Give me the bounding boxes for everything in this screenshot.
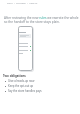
staticText: Say the store handles pays: [8, 89, 42, 93]
staticText: After reviewing the new rules we rewrote…: [4, 16, 80, 20]
button[interactable]: Docs › Strategy › Sign-in: [7, 1, 38, 4]
button[interactable]: Give a heads-up now: [5, 79, 35, 83]
staticText: Give a heads-up now: [8, 79, 35, 83]
staticText: so the handoff to the store stays plain.: [4, 20, 60, 24]
button[interactable]: Say the store handles pays: [5, 89, 42, 93]
other: Phone screenshot: [18, 26, 33, 71]
staticText: Keep the opt-out up: [8, 84, 34, 88]
button[interactable]: Keep the opt-out up: [5, 84, 34, 88]
staticText: Two obligations: [3, 74, 26, 78]
